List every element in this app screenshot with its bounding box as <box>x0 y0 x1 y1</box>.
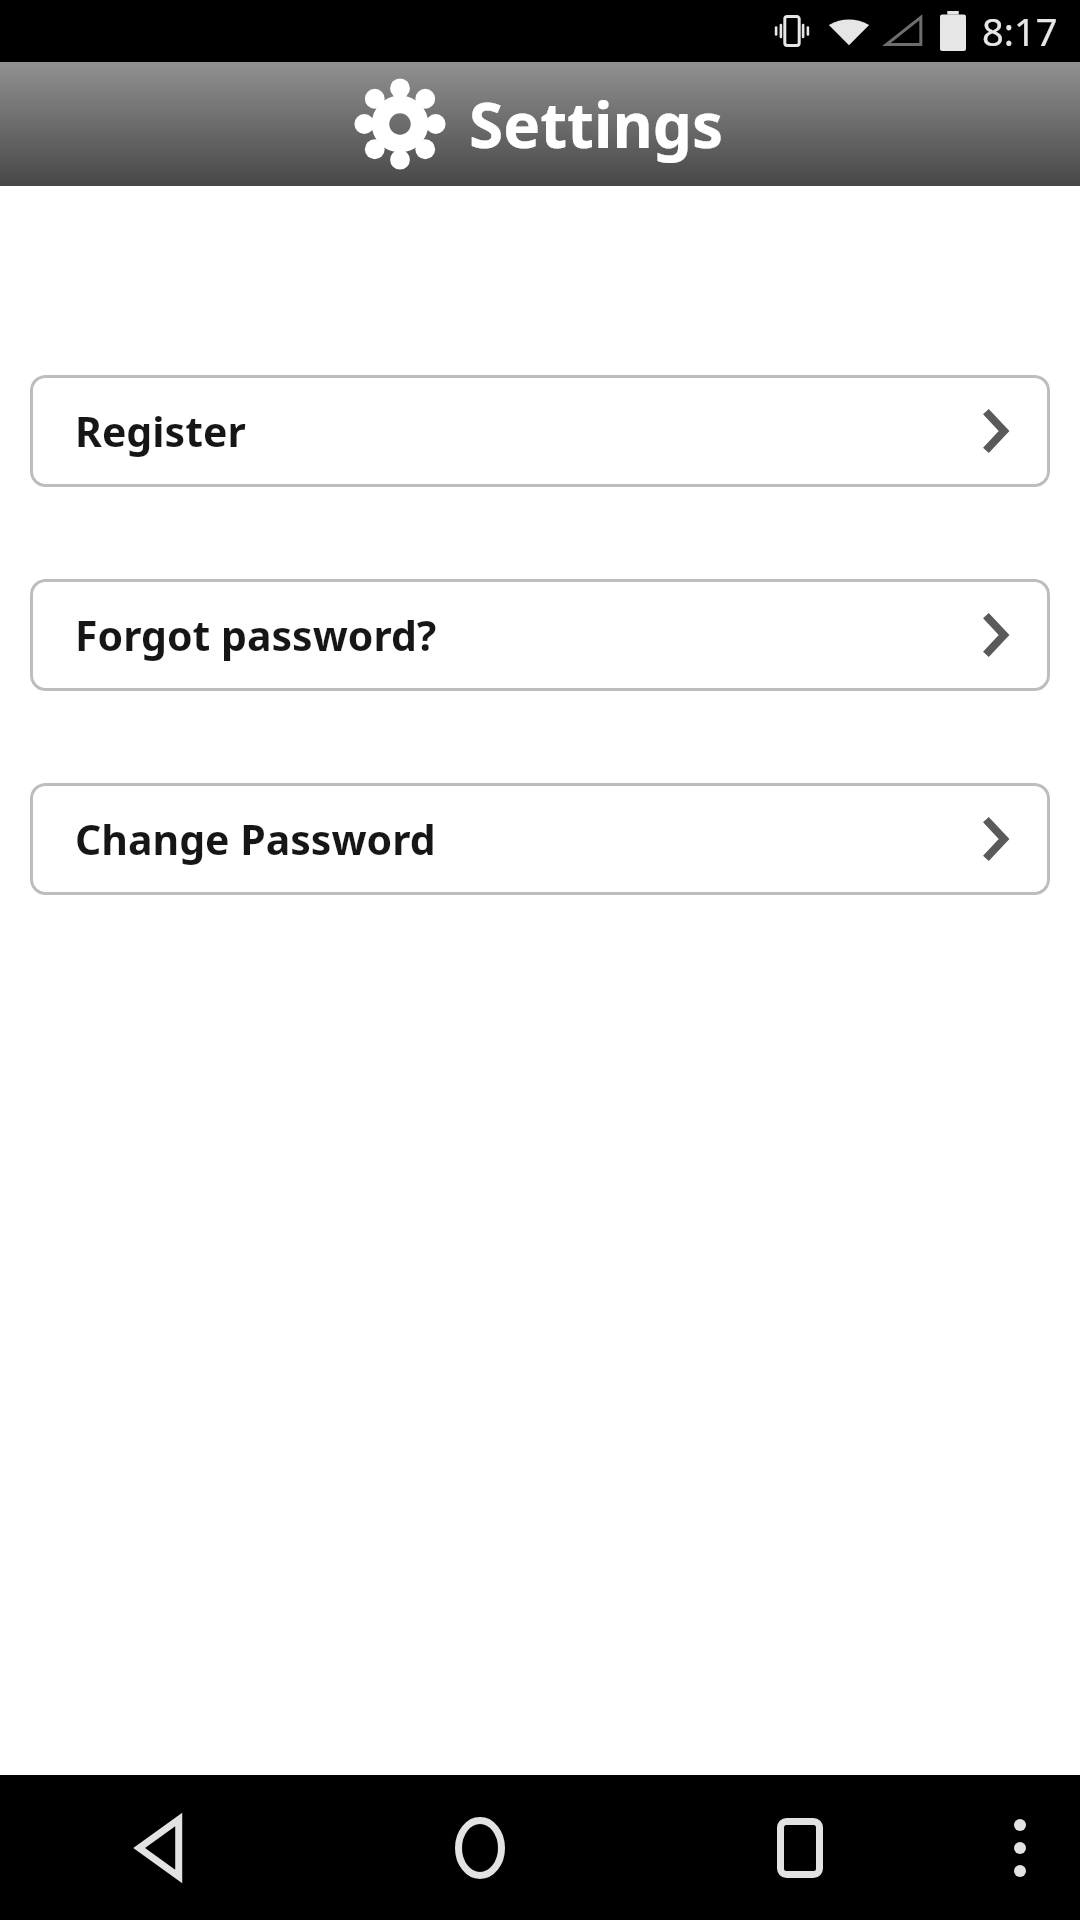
button[interactable]: Recent apps <box>640 1775 960 1920</box>
button[interactable]: Back <box>0 1775 320 1920</box>
staticText: Change Password <box>75 811 436 867</box>
button[interactable]: Forgot password? <box>30 579 1050 691</box>
staticText: Forgot password? <box>75 607 437 663</box>
button[interactable]: More options <box>960 1775 1080 1920</box>
staticText: Settings <box>469 82 724 166</box>
button[interactable]: Change Password <box>30 783 1050 895</box>
staticText: 8:17 <box>982 5 1058 57</box>
button[interactable]: Home <box>320 1775 640 1920</box>
button[interactable]: Register <box>30 375 1050 487</box>
staticText: Register <box>75 403 246 459</box>
